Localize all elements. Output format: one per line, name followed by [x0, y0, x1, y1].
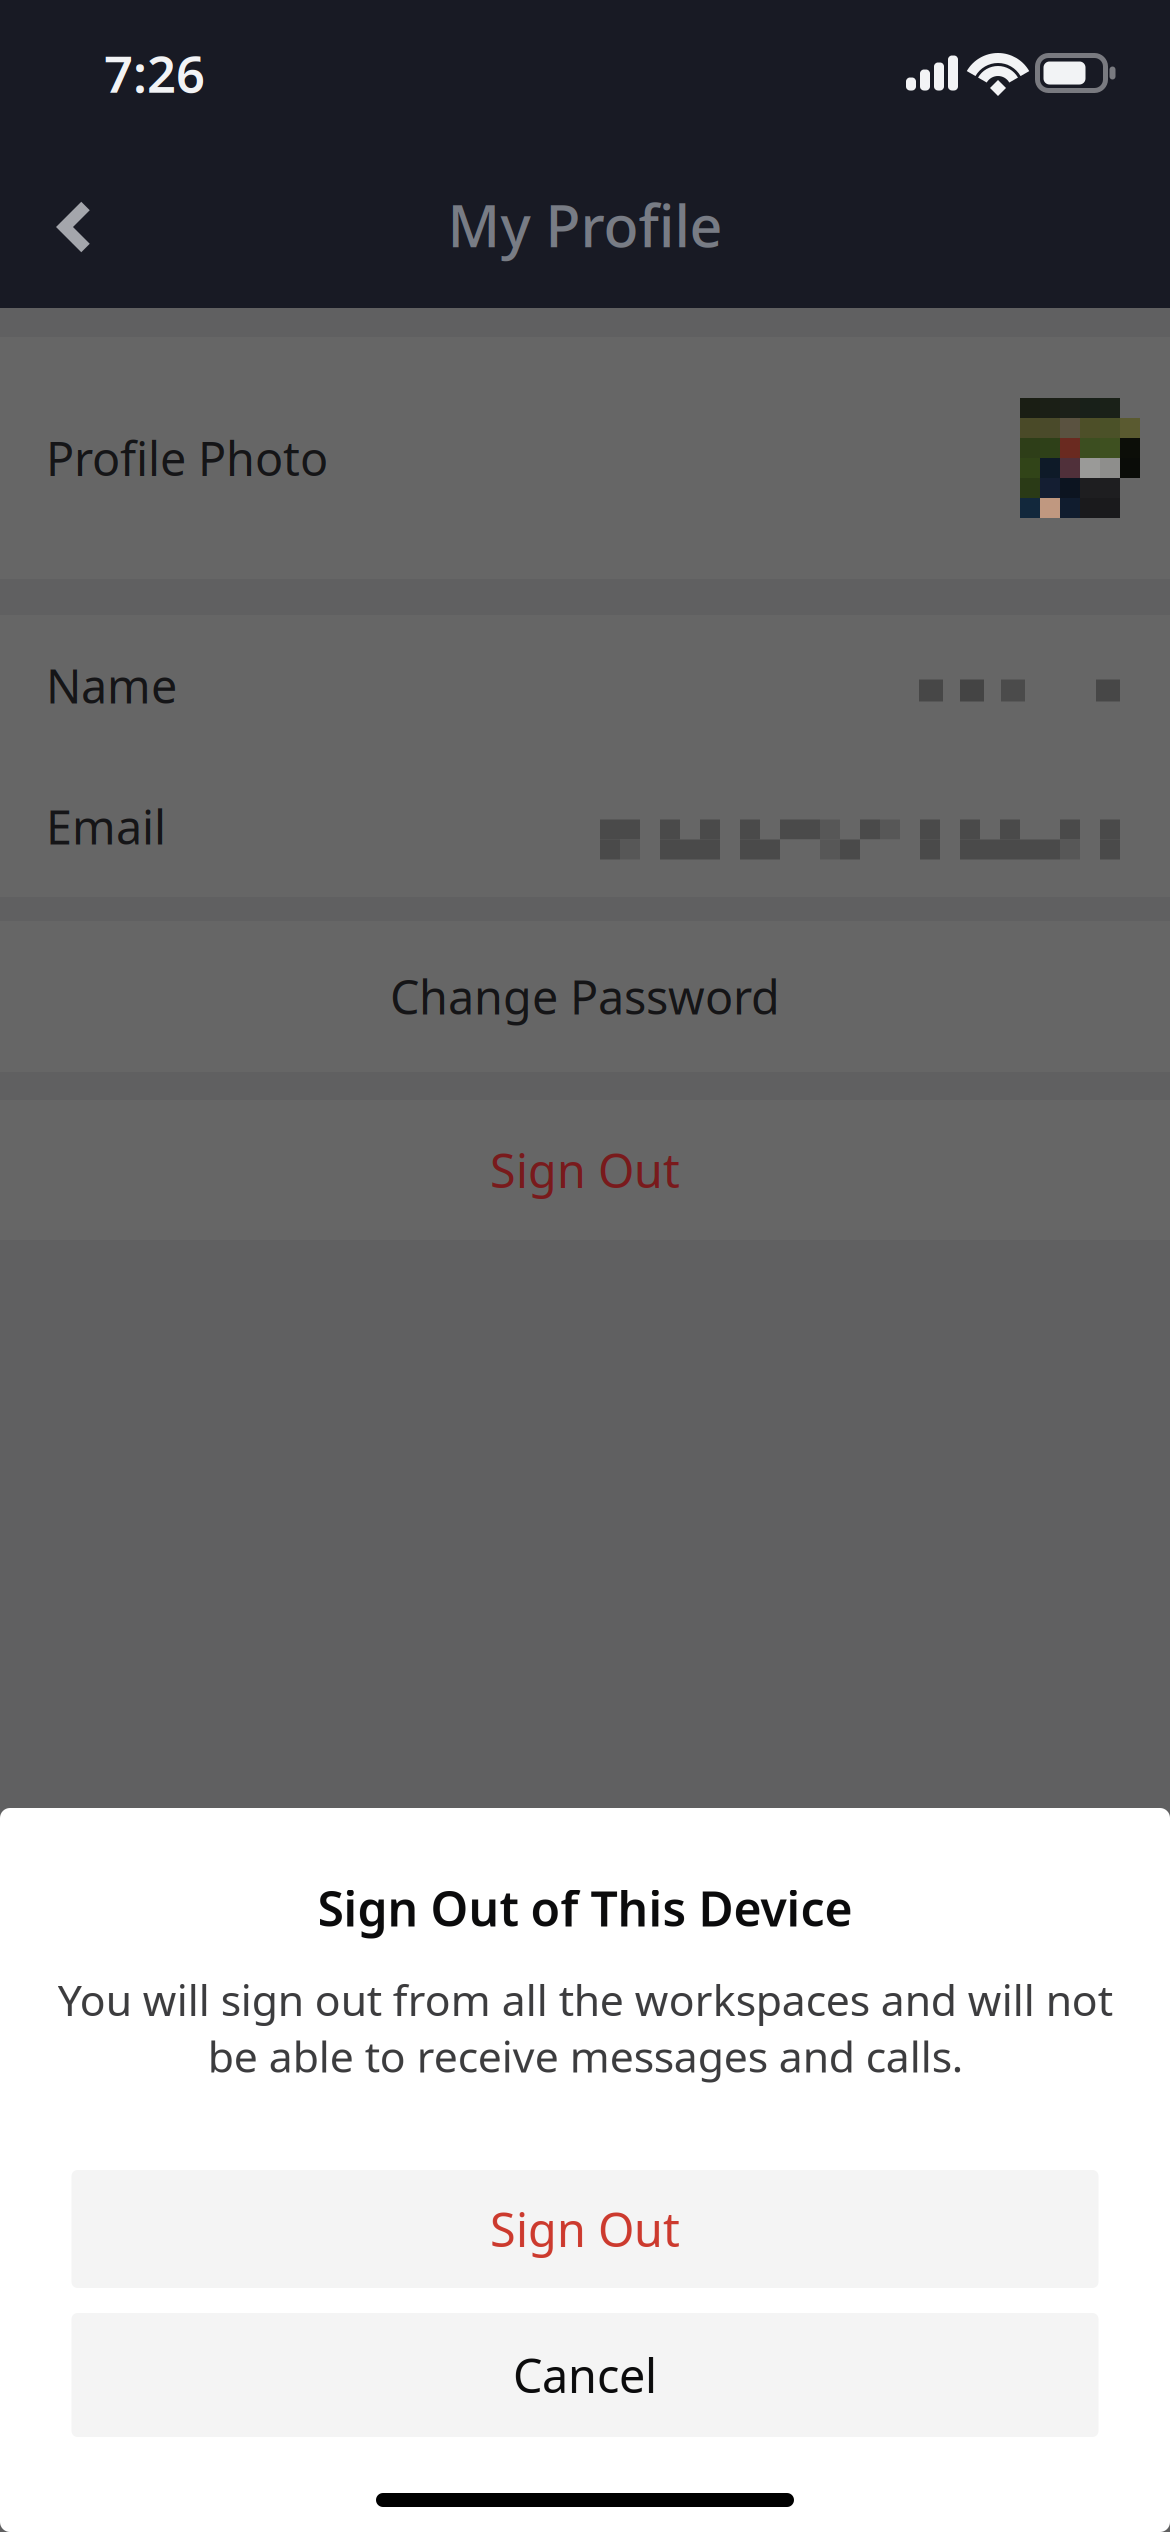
button[interactable]: Profile Photo: [0, 337, 1170, 579]
staticText: Email: [46, 795, 166, 857]
staticText: Sign Out: [490, 1139, 680, 1201]
staticText: Sign Out: [490, 2198, 680, 2260]
staticText: Profile Photo: [46, 427, 328, 489]
button[interactable]: Sign Out: [0, 1100, 1170, 1240]
button[interactable]: Name: [0, 615, 1170, 756]
button[interactable]: Change Password: [0, 921, 1170, 1072]
button[interactable]: Cancel: [71, 2313, 1098, 2437]
staticText: You will sign out from all the workspace…: [57, 1971, 1112, 2084]
staticText: Sign Out of This Device: [317, 1876, 852, 1940]
button[interactable]: Sign Out: [71, 2170, 1098, 2288]
staticText: My Profile: [447, 187, 722, 263]
staticText: Change Password: [390, 965, 780, 1027]
staticText: Cancel: [513, 2344, 657, 2406]
staticText: Name: [46, 654, 177, 716]
button[interactable]: Back: [9, 161, 141, 293]
staticText: 7:26: [104, 39, 205, 107]
button[interactable]: Email: [0, 756, 1170, 897]
